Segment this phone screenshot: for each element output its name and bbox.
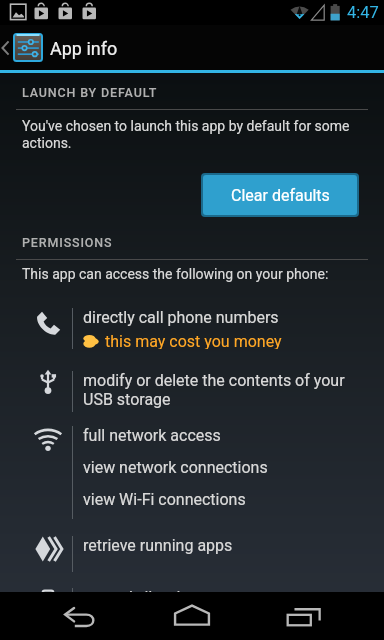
staticText: App info [50, 38, 118, 59]
button[interactable]: directly call phone numbers [0, 308, 384, 349]
button[interactable]: Recent apps [272, 592, 336, 640]
button[interactable]: modify or delete the contents of your US… [0, 371, 384, 412]
button[interactable]: full network access [0, 426, 384, 519]
staticText: full network access [83, 426, 221, 445]
button[interactable]: control vibration [0, 588, 384, 624]
staticText: view network connections [83, 458, 268, 477]
staticText: directly call phone numbers [83, 308, 279, 327]
staticText: PERMISSIONS [22, 235, 113, 250]
button[interactable]: Navigate up [0, 33, 128, 62]
button[interactable]: Clear defaults [203, 175, 357, 215]
staticText: this may cost you money [105, 332, 282, 349]
staticText: LAUNCH BY DEFAULT [22, 85, 158, 100]
staticText: retrieve running apps [83, 536, 233, 555]
button[interactable]: retrieve running apps [0, 536, 384, 572]
staticText: This app can access the following on you… [22, 266, 329, 282]
staticText: You've chosen to launch this app by defa… [22, 118, 358, 152]
staticText: 4:47 [347, 3, 379, 22]
staticText: view Wi-Fi connections [83, 490, 246, 509]
button[interactable]: Home [160, 592, 224, 640]
staticText: Clear defaults [231, 186, 330, 205]
staticText: modify or delete the contents of your US… [83, 371, 362, 409]
staticText: control vibration [83, 588, 199, 607]
button[interactable]: Back [48, 592, 112, 640]
other: Navigate up [0, 37, 11, 59]
